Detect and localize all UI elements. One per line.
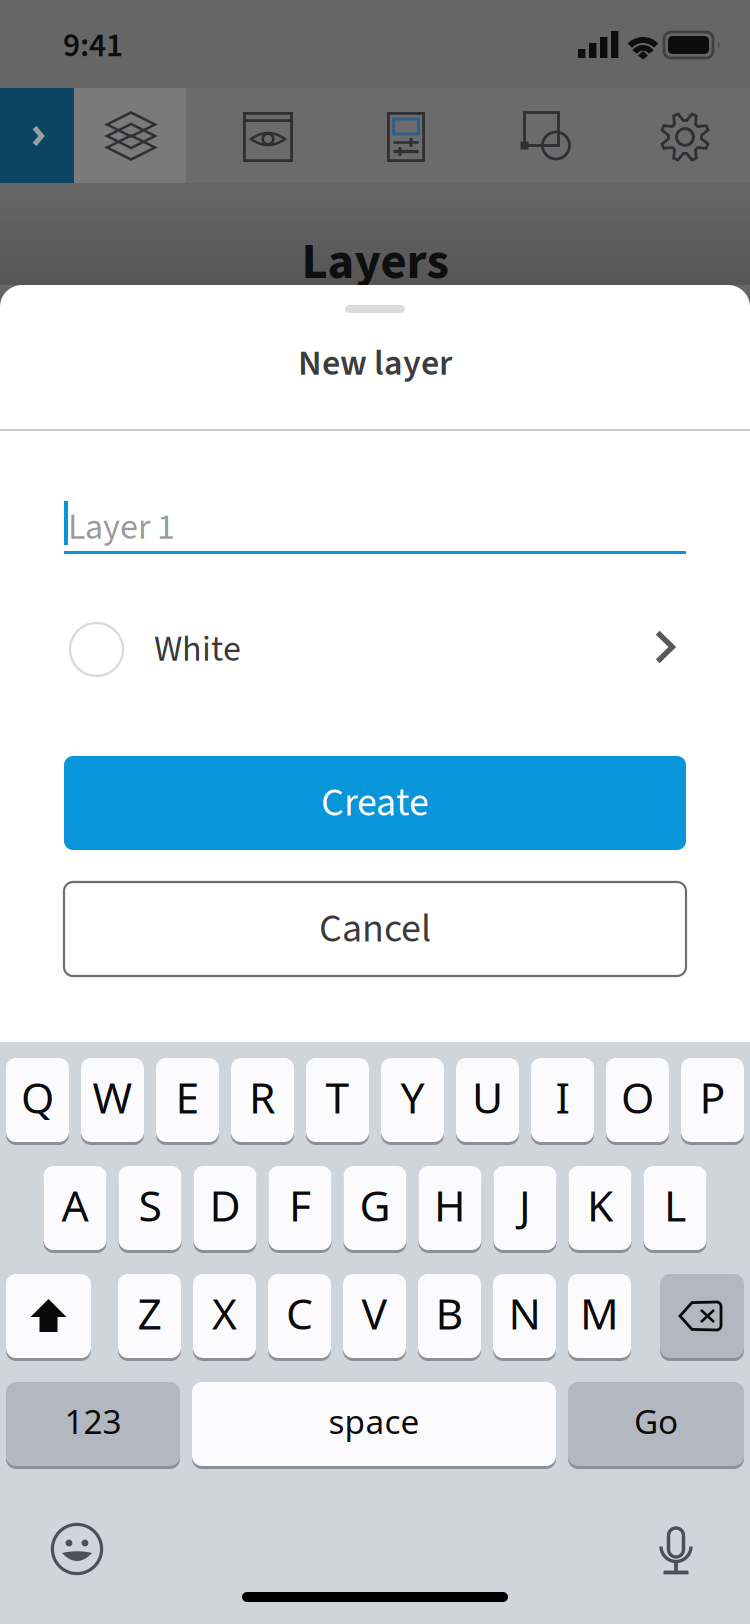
- button[interactable]: Preview: [186, 88, 324, 183]
- staticText: M: [580, 1284, 619, 1342]
- staticText: D: [209, 1176, 240, 1234]
- staticText: R: [249, 1068, 276, 1126]
- button[interactable]: Shift: [6, 1274, 91, 1361]
- staticText: S: [138, 1176, 161, 1234]
- staticText: Layers: [301, 226, 448, 298]
- staticText: White: [154, 624, 241, 675]
- button[interactable]: White: [64, 617, 686, 681]
- button[interactable]: Adjustments: [324, 88, 462, 183]
- button[interactable]: Cancel: [64, 882, 686, 976]
- button[interactable]: T: [306, 1058, 369, 1145]
- button[interactable]: Layers: [74, 88, 186, 183]
- button[interactable]: H: [418, 1166, 481, 1253]
- button[interactable]: Create: [64, 756, 686, 850]
- button[interactable]: U: [456, 1058, 519, 1145]
- staticText: Go: [634, 1398, 678, 1444]
- button[interactable]: Settings: [600, 88, 750, 183]
- staticText: space: [328, 1398, 419, 1444]
- button[interactable]: I: [531, 1058, 594, 1145]
- button[interactable]: space: [192, 1382, 556, 1469]
- button[interactable]: A: [43, 1166, 106, 1253]
- staticText: C: [286, 1284, 313, 1342]
- button[interactable]: Delete: [660, 1274, 744, 1361]
- button[interactable]: D: [193, 1166, 256, 1253]
- staticText: O: [621, 1068, 654, 1126]
- staticText: B: [435, 1284, 463, 1342]
- staticText: Layer 1: [68, 502, 175, 553]
- staticText: F: [289, 1176, 311, 1234]
- button[interactable]: Y: [381, 1058, 444, 1145]
- button[interactable]: Emoji keyboard: [45, 1517, 109, 1581]
- staticText: L: [664, 1176, 686, 1234]
- staticText: X: [212, 1284, 237, 1342]
- button[interactable]: C: [268, 1274, 331, 1361]
- button[interactable]: B: [418, 1274, 481, 1361]
- button[interactable]: Shapes: [462, 88, 600, 183]
- staticText: Q: [21, 1068, 54, 1126]
- staticText: G: [359, 1176, 390, 1234]
- button[interactable]: R: [231, 1058, 294, 1145]
- button[interactable]: Q: [6, 1058, 69, 1145]
- staticText: New layer: [298, 338, 452, 389]
- staticText: N: [508, 1284, 540, 1342]
- button[interactable]: K: [568, 1166, 631, 1253]
- staticText: V: [361, 1284, 387, 1342]
- staticText: K: [587, 1176, 613, 1234]
- button[interactable]: S: [118, 1166, 181, 1253]
- staticText: I: [555, 1068, 569, 1126]
- button[interactable]: L: [643, 1166, 706, 1253]
- staticText: A: [61, 1176, 88, 1234]
- staticText: Create: [321, 774, 429, 831]
- button[interactable]: O: [606, 1058, 669, 1145]
- button[interactable]: W: [81, 1058, 144, 1145]
- button[interactable]: M: [568, 1274, 631, 1361]
- staticText: E: [175, 1068, 199, 1126]
- staticText: P: [699, 1068, 725, 1126]
- staticText: Y: [400, 1068, 424, 1126]
- button[interactable]: F: [268, 1166, 331, 1253]
- staticText: U: [472, 1068, 503, 1126]
- button[interactable]: 123: [6, 1382, 180, 1469]
- staticText: W: [92, 1068, 132, 1126]
- staticText: Cancel: [319, 900, 431, 957]
- button[interactable]: Go: [568, 1382, 744, 1469]
- staticText: J: [519, 1176, 531, 1234]
- staticText: 123: [64, 1398, 121, 1444]
- button[interactable]: G: [343, 1166, 406, 1253]
- button[interactable]: Show sidebar: [0, 88, 74, 183]
- button[interactable]: V: [343, 1274, 406, 1361]
- button[interactable]: P: [681, 1058, 744, 1145]
- button[interactable]: Z: [118, 1274, 181, 1361]
- button[interactable]: Dictation: [645, 1521, 709, 1585]
- staticText: H: [434, 1176, 466, 1234]
- button[interactable]: X: [193, 1274, 256, 1361]
- staticText: 9:41: [63, 22, 123, 69]
- button[interactable]: E: [156, 1058, 219, 1145]
- staticText: Z: [137, 1284, 161, 1342]
- button[interactable]: J: [493, 1166, 556, 1253]
- button[interactable]: N: [493, 1274, 556, 1361]
- staticText: T: [325, 1068, 349, 1126]
